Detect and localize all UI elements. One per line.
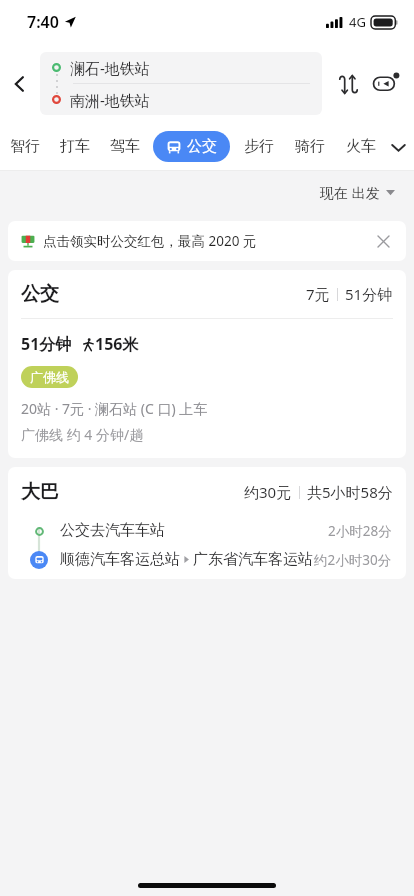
staticText: 步行 [244,137,274,156]
button[interactable]: 打车 [50,123,100,170]
staticText: 大巴 [21,480,59,504]
button[interactable]: 大巴 [8,467,406,579]
button[interactable]: Close [368,226,398,256]
button[interactable]: Back [0,64,40,104]
staticText: 骑行 [295,137,325,156]
staticText: 现在 出发 [320,183,380,202]
staticText: 公交去汽车车站 [60,521,165,540]
staticText: 广佛线 约 4 分钟/趟 [21,425,144,444]
staticText: 澜石-地铁站 [70,58,150,78]
staticText: 公交 [187,137,217,156]
staticText: 7:40 [27,11,59,33]
staticText: 驾车 [110,137,140,156]
staticText: 打车 [60,137,90,156]
staticText: 4G [349,13,366,31]
button[interactable]: 公交 [8,270,406,458]
staticText: 51分钟 [345,284,393,304]
button[interactable]: 骑行 [284,123,335,170]
staticText: 156米 [95,333,139,355]
button[interactable]: 公交 [153,131,230,162]
button[interactable]: 驾车 [100,123,150,170]
button[interactable]: 步行 [233,123,284,170]
staticText: 南洲-地铁站 [70,90,150,110]
staticText: 公交 [21,282,59,306]
button[interactable]: 火车 [335,123,386,170]
button[interactable]: 澜石-地铁站 [40,52,322,83]
button[interactable]: 智行 [0,123,50,170]
button[interactable]: Transit card [366,64,406,104]
staticText: 广佛线 [30,369,69,385]
staticText: 广东省汽车客运站 [193,550,313,569]
button[interactable]: 现在 出发 [316,179,399,206]
staticText: 20站 · 7元 · 澜石站 (C 口) 上车 [21,399,208,418]
staticText: 共5小时58分 [307,482,393,502]
button[interactable]: 南洲-地铁站 [40,84,322,115]
staticText: 51分钟 [21,333,72,355]
staticText: 点击领实时公交红包，最高 2020 元 [43,232,257,250]
button[interactable]: 点击领实时公交红包，最高 2020 元 [8,221,406,261]
staticText: 智行 [10,137,40,156]
staticText: 火车 [346,137,376,156]
staticText: 顺德汽车客运总站 [60,550,180,569]
button[interactable]: More modes [382,131,414,163]
staticText: 约30元 [244,482,292,502]
button[interactable]: Swap origin and destination [330,66,366,102]
staticText: 2小时28分 [328,522,392,540]
staticText: 约2小时30分 [314,551,392,569]
staticText: 7元 [306,284,330,304]
